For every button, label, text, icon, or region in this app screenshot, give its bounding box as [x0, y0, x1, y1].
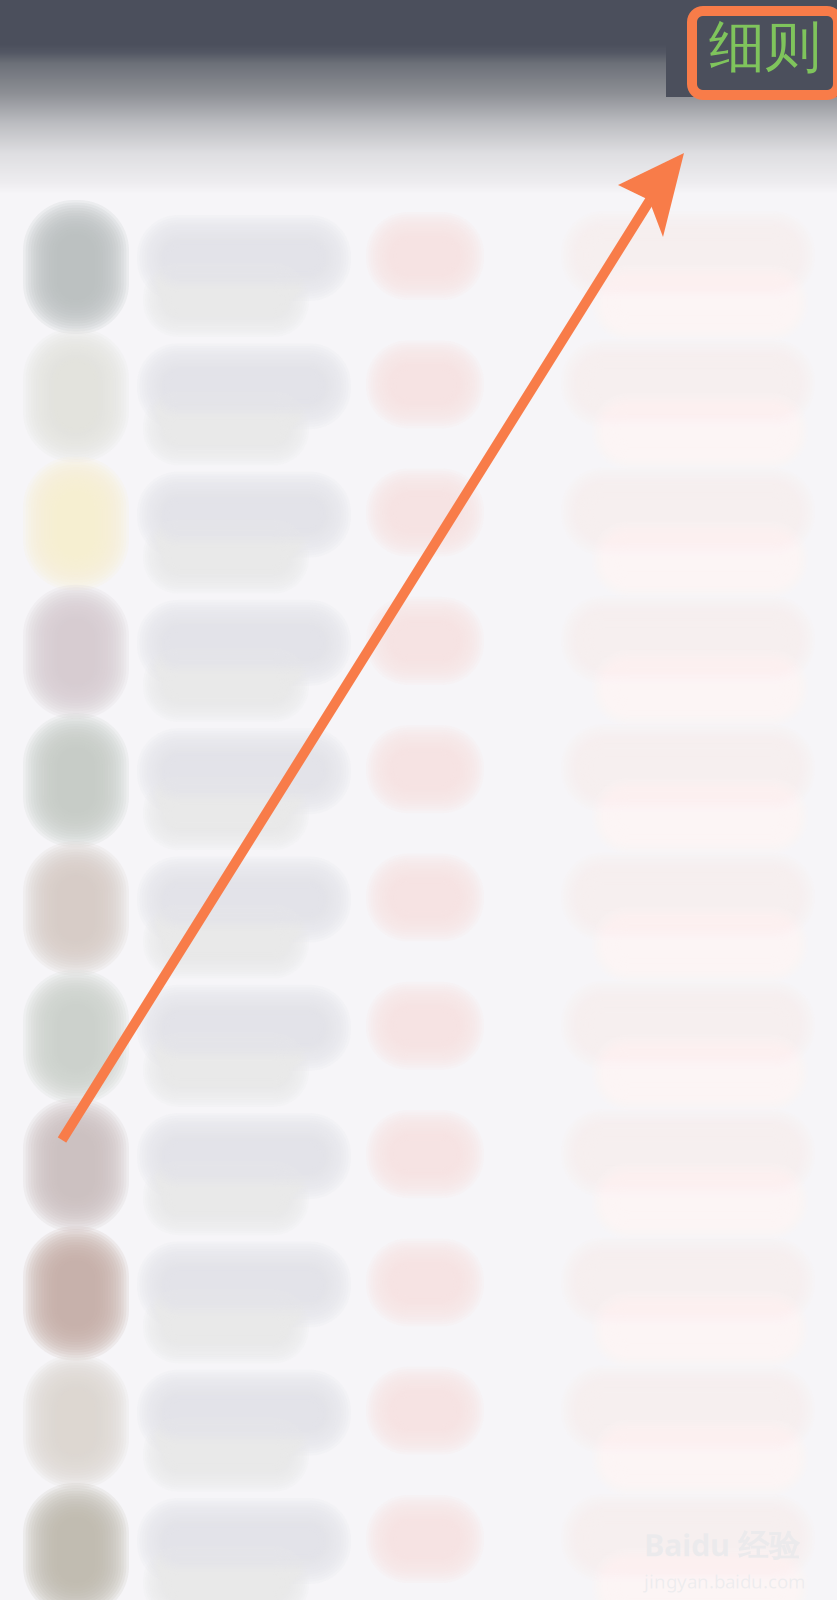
button[interactable]: [0, 0, 837, 134]
button[interactable]: [0, 0, 837, 134]
staticText: Baidu 经验: [644, 1524, 800, 1565]
button[interactable]: [0, 0, 837, 134]
button[interactable]: [0, 0, 837, 134]
button[interactable]: 细则: [700, 12, 830, 82]
button[interactable]: [0, 0, 837, 134]
staticText: 细则: [709, 13, 821, 81]
button[interactable]: [0, 0, 837, 134]
button[interactable]: [0, 0, 837, 134]
button[interactable]: [0, 0, 837, 134]
button[interactable]: [0, 0, 837, 134]
button[interactable]: [0, 0, 837, 134]
staticText: jingyan.baidu.com: [644, 1569, 805, 1594]
button[interactable]: [0, 0, 837, 134]
